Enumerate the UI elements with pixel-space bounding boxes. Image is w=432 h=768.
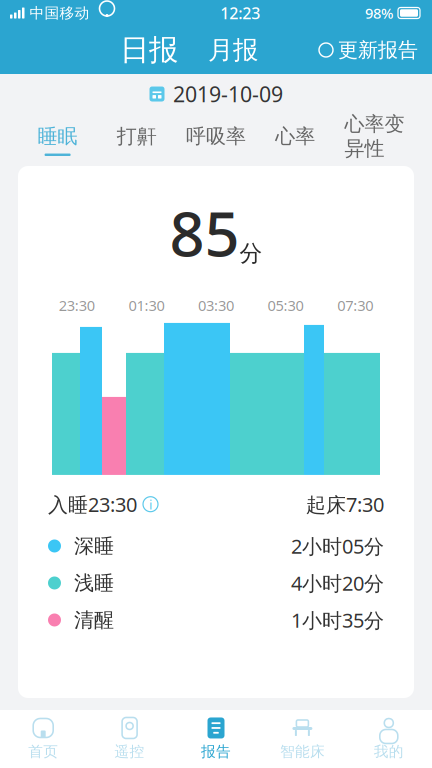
button[interactable]: 报告	[173, 711, 259, 767]
staticText: 深睡	[74, 534, 114, 558]
staticText: 03:30	[198, 295, 234, 315]
staticText: 中国移动	[29, 4, 89, 22]
button[interactable]: 月报	[178, 34, 258, 65]
staticText: 98%	[365, 3, 393, 23]
staticText: 起床7:30	[306, 491, 384, 517]
staticText: 4小时20分	[291, 570, 384, 596]
staticText: 打鼾	[117, 124, 157, 149]
staticText: 智能床	[280, 742, 325, 760]
staticText: 2019-10-09	[173, 80, 283, 108]
staticText: 报告	[201, 742, 231, 760]
staticText: i	[149, 495, 152, 513]
button[interactable]: 呼吸率	[176, 124, 256, 156]
staticText: 85	[169, 192, 239, 273]
staticText: 1小时35分	[291, 607, 384, 633]
staticText: 更新报告	[338, 38, 418, 62]
staticText: 05:30	[268, 295, 304, 315]
staticText: 23:30	[59, 295, 95, 315]
button[interactable]: 睡眠	[18, 124, 97, 156]
button[interactable]: 日报	[120, 32, 178, 68]
staticText: 呼吸率	[186, 124, 246, 149]
staticText: 分	[239, 240, 262, 267]
staticText: 日报	[120, 32, 178, 68]
staticText: 月报	[208, 34, 258, 65]
button[interactable]: 我的	[346, 711, 432, 767]
staticText: 12:23	[220, 2, 260, 24]
staticText: 07:30	[337, 295, 373, 315]
staticText: 01:30	[128, 295, 164, 315]
button[interactable]: 心率	[256, 124, 335, 156]
button[interactable]: 遥控	[86, 711, 173, 767]
staticText: 2小时05分	[291, 533, 384, 559]
button[interactable]: 更新报告	[319, 38, 432, 62]
button[interactable]: 打鼾	[97, 124, 176, 156]
staticText: 浅睡	[74, 571, 114, 595]
button[interactable]: 首页	[0, 711, 86, 767]
staticText: 我的	[374, 742, 404, 760]
button[interactable]: 智能床	[259, 711, 346, 767]
staticText: 遥控	[115, 742, 145, 760]
staticText: 心率变异性	[344, 112, 404, 161]
staticText: 入睡23:30	[48, 491, 137, 517]
button[interactable]: 2019-10-09	[149, 80, 283, 108]
staticText: 睡眠	[38, 124, 78, 149]
button[interactable]: 睡眠说明	[137, 495, 158, 513]
staticText: 心率	[275, 124, 315, 149]
staticText: 清醒	[74, 608, 114, 632]
button[interactable]: 心率变异性	[335, 112, 414, 168]
staticText: 首页	[28, 742, 58, 760]
